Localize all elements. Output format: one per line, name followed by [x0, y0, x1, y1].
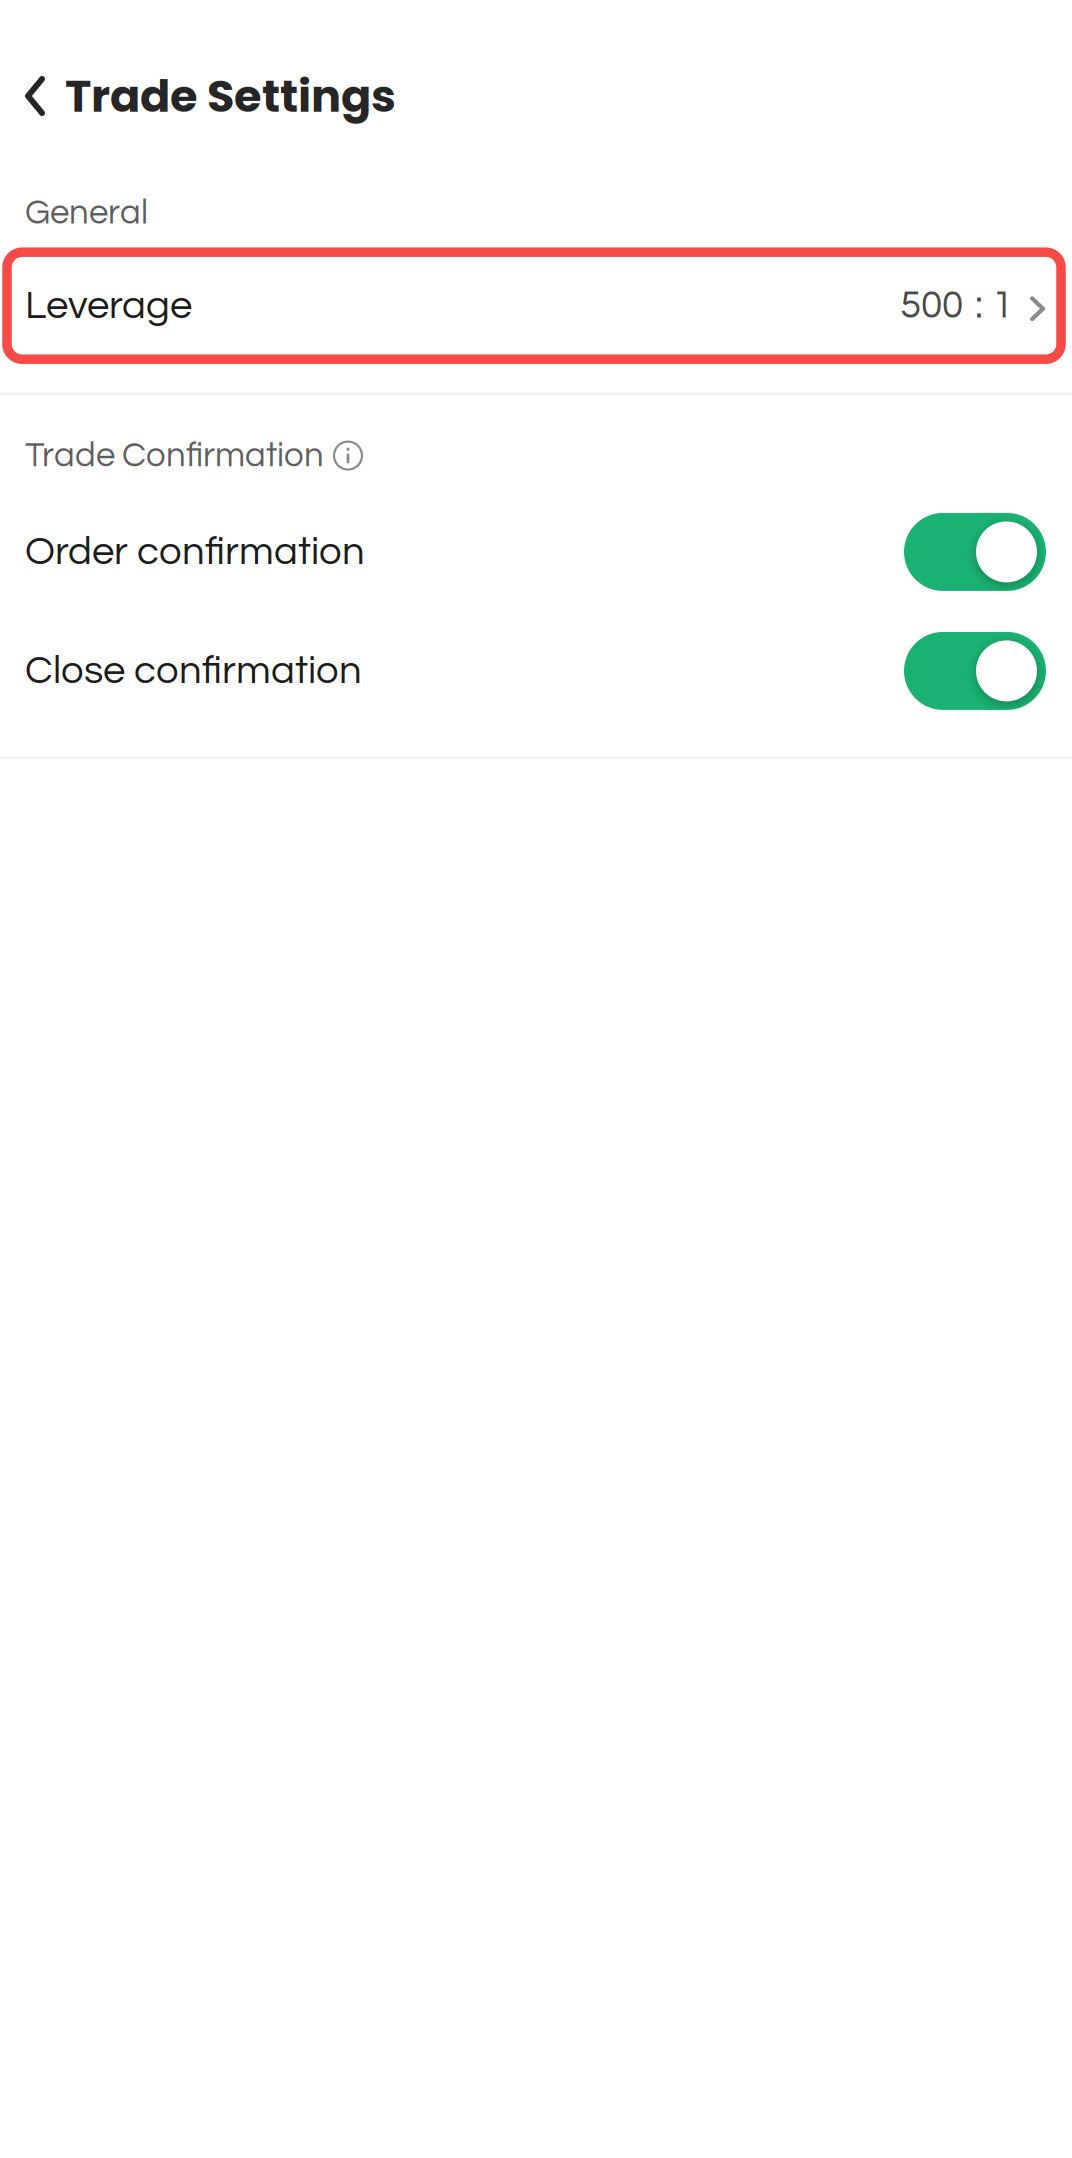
staticText: Leverage	[25, 285, 192, 326]
button[interactable]: Close confirmation	[0, 611, 1072, 730]
staticText: Close confirmation	[25, 650, 362, 691]
button[interactable]: Order confirmation	[0, 492, 1072, 611]
staticText: Trade Confirmation	[25, 438, 324, 473]
staticText: General	[25, 195, 148, 231]
staticText: 500	[900, 286, 963, 326]
button[interactable]: Back	[25, 65, 45, 127]
staticText: Trade Settings	[65, 65, 396, 127]
staticText: Order confirmation	[25, 531, 365, 572]
button[interactable]: About trade confirmation	[333, 441, 363, 471]
button[interactable]: Leverage	[0, 248, 1072, 364]
staticText: 1	[992, 286, 1013, 326]
staticText: :	[975, 286, 983, 326]
